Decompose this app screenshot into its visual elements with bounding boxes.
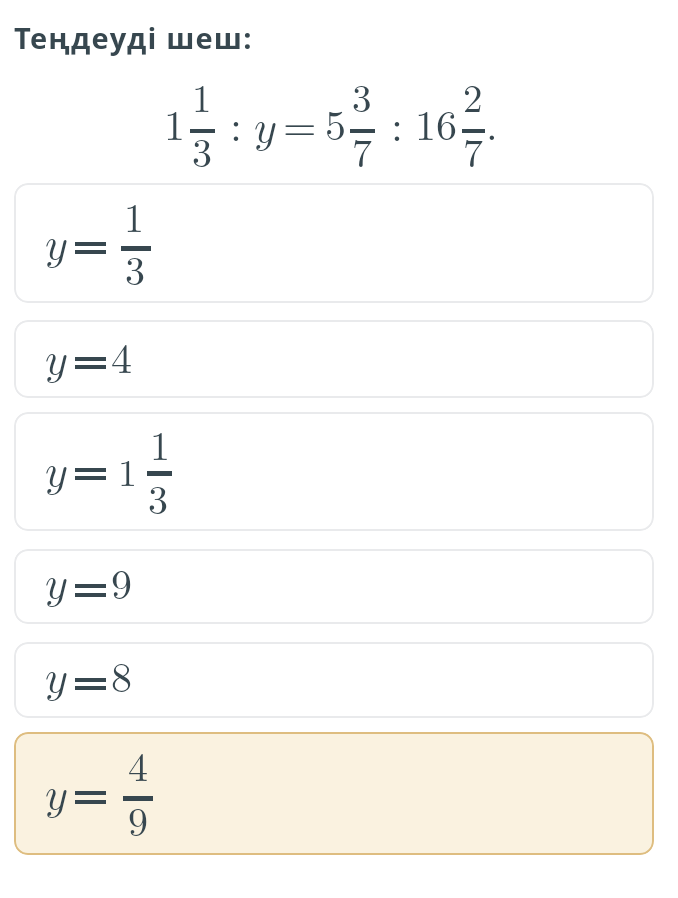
button[interactable] [14, 642, 654, 718]
staticText: 9 [111, 552, 133, 612]
staticText: 7 [352, 122, 372, 179]
staticText: 3 [148, 469, 168, 526]
staticText: 1 [164, 93, 186, 153]
staticText: . [486, 93, 498, 153]
staticText: 𝑦 [45, 657, 67, 701]
staticText: 1 [150, 415, 170, 472]
staticText: 3 [352, 68, 372, 123]
staticText: 𝑦 [45, 339, 67, 383]
staticText: 𝑦 [45, 224, 67, 268]
staticText: 5 [325, 93, 347, 153]
staticText: 16 [415, 93, 458, 153]
staticText: 3 [125, 240, 145, 297]
button[interactable] [14, 732, 654, 855]
staticText: 𝑦 [254, 107, 276, 151]
staticText: : [391, 93, 403, 154]
staticText: 9 [128, 791, 148, 848]
staticText: 2 [463, 68, 483, 123]
staticText: 4 [128, 736, 148, 793]
button[interactable] [14, 549, 654, 624]
staticText: 8 [111, 645, 133, 705]
staticText: 1 [192, 68, 212, 123]
staticText: 4 [111, 326, 133, 386]
staticText: 1 [124, 187, 144, 244]
staticText: 𝑦 [45, 451, 67, 495]
staticText: 𝑦 [45, 774, 67, 818]
button[interactable] [14, 320, 654, 398]
staticText: = [283, 93, 317, 154]
button[interactable] [14, 412, 654, 531]
staticText: 3 [192, 122, 212, 179]
staticText: Теңдеуді шеш: [14, 18, 253, 57]
staticText: : [230, 93, 242, 154]
staticText: 𝑦 [45, 563, 67, 607]
staticText: 1 [118, 443, 138, 497]
staticText: 7 [463, 122, 483, 179]
button[interactable] [14, 183, 654, 303]
